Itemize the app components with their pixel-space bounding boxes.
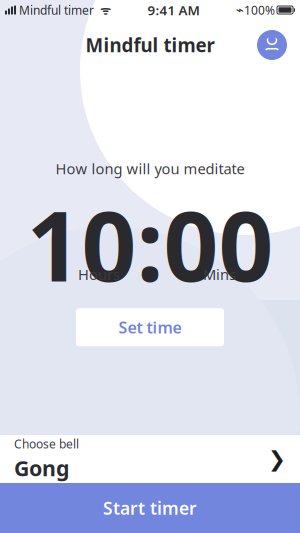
button[interactable]: Set time xyxy=(76,308,224,346)
button[interactable]: Start timer xyxy=(0,483,300,533)
button[interactable]: Profile xyxy=(255,28,289,62)
staticText: How long will you meditate xyxy=(55,159,244,178)
staticText: ᯤ xyxy=(94,2,111,18)
staticText: Gong xyxy=(14,454,69,482)
button[interactable]: Choose bell xyxy=(0,435,300,483)
staticText: Hours xyxy=(78,264,120,284)
staticText: ❯ xyxy=(268,447,286,471)
staticText: 100% xyxy=(244,2,275,18)
staticText: Mindful timer xyxy=(85,33,214,57)
staticText: Mindful timer xyxy=(16,2,94,18)
staticText: Start timer xyxy=(103,496,197,519)
staticText: ⌁ xyxy=(236,2,244,17)
staticText: 9:41 AM xyxy=(147,1,199,19)
staticText: Choose bell xyxy=(14,436,79,452)
staticText: 10:00 xyxy=(26,180,273,308)
staticText: Mins xyxy=(203,264,236,284)
staticText: Set time xyxy=(118,317,181,338)
